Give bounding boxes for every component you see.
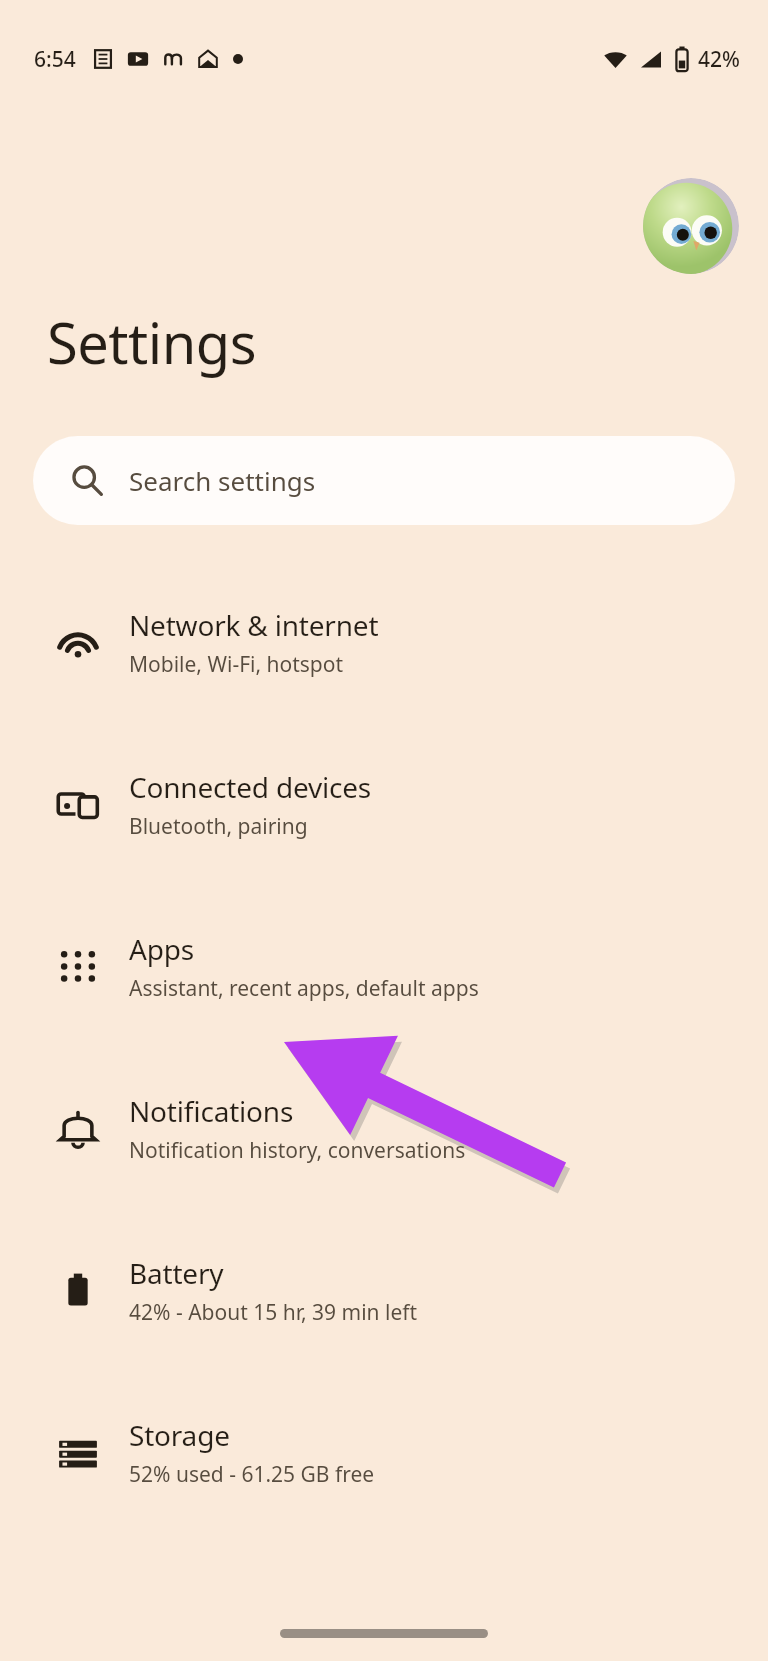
button[interactable]: Storage <box>0 1371 768 1533</box>
staticText: 42% <box>698 45 740 74</box>
staticText: 6:54 <box>34 45 76 74</box>
staticText: Notifications <box>129 1092 294 1130</box>
staticText: 42% - About 15 hr, 39 min left <box>129 1298 418 1327</box>
staticText: Connected devices <box>129 768 372 806</box>
button[interactable]: Apps <box>0 885 768 1047</box>
staticText: 52% used - 61.25 GB free <box>129 1460 375 1489</box>
button[interactable]: Battery <box>0 1209 768 1371</box>
staticText: Settings <box>47 304 257 380</box>
button[interactable]: Search settings <box>33 436 735 525</box>
staticText: Search settings <box>129 463 316 498</box>
staticText: Apps <box>129 930 194 968</box>
button[interactable]: Account avatar <box>643 178 739 274</box>
staticText: Mobile, Wi-Fi, hotspot <box>129 650 344 679</box>
staticText: Bluetooth, pairing <box>129 812 308 841</box>
staticText: Notification history, conversations <box>129 1136 466 1165</box>
staticText: Assistant, recent apps, default apps <box>129 974 479 1003</box>
staticText: Network & internet <box>129 606 379 644</box>
staticText: Battery <box>129 1254 224 1292</box>
button[interactable]: Connected devices <box>0 723 768 885</box>
button[interactable]: Network & internet <box>0 561 768 723</box>
button[interactable]: Notifications <box>0 1047 768 1209</box>
staticText: Storage <box>129 1416 230 1454</box>
